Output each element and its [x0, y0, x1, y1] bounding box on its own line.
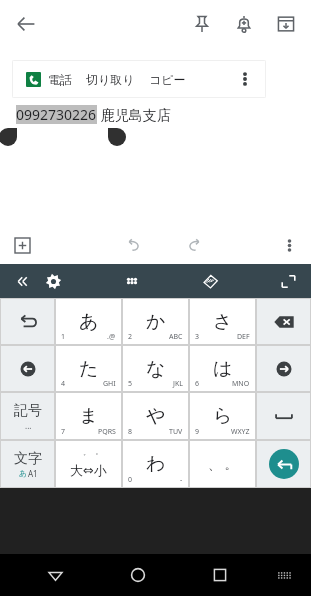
staticText: な: [146, 357, 166, 381]
button[interactable]: Pin: [187, 9, 217, 39]
button[interactable]: Archive: [271, 9, 301, 39]
button[interactable]: Back: [8, 6, 44, 42]
button[interactable]: わ: [123, 441, 188, 487]
staticText: TUV: [169, 427, 183, 437]
staticText: 文字: [14, 450, 42, 468]
staticText: わ: [146, 452, 166, 476]
button[interactable]: Key: [257, 299, 310, 344]
staticText: MNO: [232, 379, 250, 389]
staticText: 2: [128, 332, 133, 342]
button[interactable]: は: [190, 346, 255, 391]
button[interactable]: Recent apps: [179, 554, 261, 596]
button[interactable]: ゛ ゜: [56, 441, 121, 487]
button[interactable]: Resize keyboard: [275, 268, 301, 294]
button[interactable]: 記号: [1, 393, 54, 439]
button[interactable]: さ: [190, 299, 255, 344]
staticText: ゛ ゜: [78, 451, 99, 462]
staticText: ら: [213, 404, 233, 428]
button[interactable]: More options: [234, 68, 256, 90]
button[interactable]: Add reminder: [229, 9, 259, 39]
staticText: 8: [128, 427, 133, 437]
staticText: 6: [195, 379, 200, 389]
staticText: WXYZ: [231, 427, 250, 437]
staticText: 大⇔小: [70, 462, 107, 478]
button[interactable]: Settings: [40, 268, 66, 294]
staticText: 0: [128, 475, 133, 485]
staticText: あ: [19, 468, 28, 478]
button[interactable]: Add: [8, 231, 36, 259]
button[interactable]: や: [123, 393, 188, 439]
staticText: 電話: [48, 72, 72, 87]
button[interactable]: な: [123, 346, 188, 391]
button[interactable]: Hide keyboard: [261, 554, 307, 596]
button[interactable]: た: [56, 346, 121, 391]
button[interactable]: Key: [1, 299, 54, 344]
button[interactable]: か: [123, 299, 188, 344]
staticText: 記号: [14, 402, 42, 420]
staticText: -: [180, 475, 183, 485]
staticText: あ: [79, 310, 99, 334]
staticText: 3: [195, 332, 200, 342]
staticText: ABC: [169, 332, 183, 342]
button[interactable]: Key: [257, 393, 310, 439]
button[interactable]: 電話: [26, 72, 72, 87]
button[interactable]: 文字: [1, 441, 54, 487]
staticText: た: [79, 357, 99, 381]
staticText: ま: [79, 404, 99, 428]
staticText: 4: [61, 379, 66, 389]
staticText: 0992730226: [16, 105, 97, 124]
button[interactable]: Enter: [257, 441, 310, 487]
button[interactable]: あ: [56, 299, 121, 344]
button[interactable]: Keyboard layout: [119, 268, 145, 294]
staticText: か: [146, 310, 166, 334]
staticText: 7: [61, 427, 66, 437]
staticText: 、 。: [208, 455, 238, 473]
staticText: JKL: [173, 379, 183, 389]
staticText: PQRS: [98, 427, 116, 437]
button[interactable]: Key: [257, 346, 310, 391]
staticText: 鹿児島支店: [97, 105, 171, 124]
staticText: 1: [61, 332, 66, 342]
staticText: .@: [107, 332, 116, 342]
staticText: さ: [213, 310, 233, 334]
button[interactable]: Collapse: [8, 268, 34, 294]
staticText: 9: [195, 427, 200, 437]
button[interactable]: Redo: [163, 230, 193, 260]
button[interactable]: Back: [14, 554, 97, 596]
button[interactable]: Handwriting: [197, 268, 223, 294]
button[interactable]: Undo: [119, 230, 149, 260]
button[interactable]: ら: [190, 393, 255, 439]
staticText: A1: [28, 468, 38, 479]
button[interactable]: Key: [1, 346, 54, 391]
button[interactable]: コピー: [149, 72, 186, 87]
button[interactable]: ま: [56, 393, 121, 439]
staticText: や: [146, 404, 166, 428]
staticText: 5: [128, 379, 133, 389]
button[interactable]: More options: [275, 231, 303, 259]
button[interactable]: Home: [97, 554, 179, 596]
staticText: ...: [25, 420, 32, 431]
staticText: は: [213, 357, 233, 381]
button[interactable]: 、 。: [190, 441, 255, 487]
staticText: DEF: [237, 332, 250, 342]
staticText: GHI: [103, 379, 116, 389]
button[interactable]: 切り取り: [86, 72, 135, 87]
